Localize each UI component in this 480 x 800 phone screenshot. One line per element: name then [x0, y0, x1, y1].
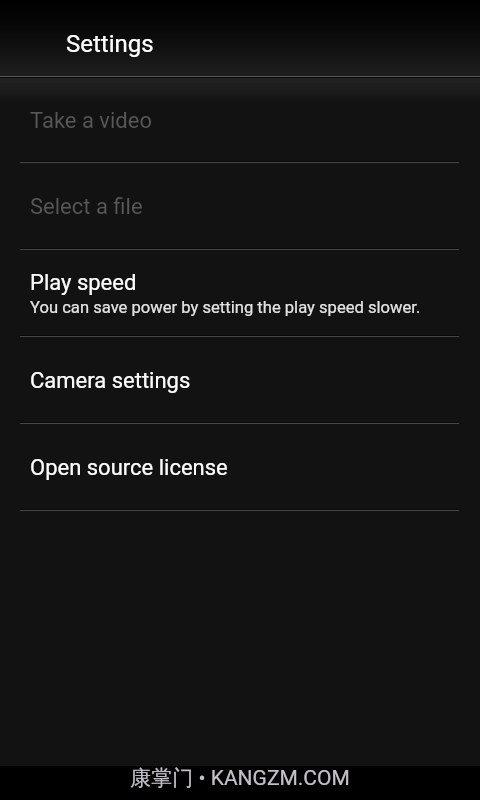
staticText: You can save power by setting the play s… [30, 298, 421, 317]
button[interactable]: Take a video [0, 78, 480, 163]
button[interactable]: Select a file [0, 163, 480, 250]
staticText: Camera settings [30, 368, 191, 394]
staticText: Open source license [30, 455, 228, 481]
button[interactable]: Camera settings [0, 337, 480, 424]
staticText: Select a file [30, 194, 143, 220]
staticText: 康掌门 • KANGZM.COM [130, 765, 350, 791]
staticText: Settings [66, 30, 154, 58]
button[interactable]: Open source license [0, 424, 480, 511]
staticText: Take a video [30, 108, 152, 134]
button[interactable]: Play speed [0, 250, 480, 337]
staticText: Play speed [30, 270, 137, 296]
